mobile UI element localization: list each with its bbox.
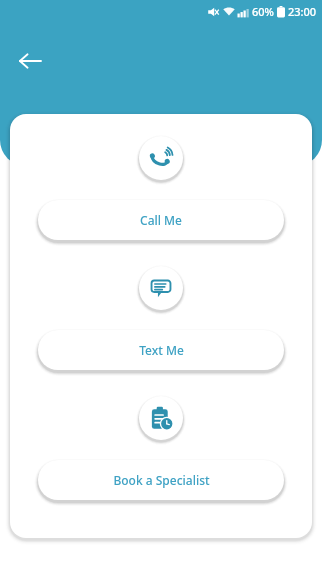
button[interactable]: Book a Specialist	[137, 394, 185, 442]
button[interactable]: Call Me	[38, 200, 284, 240]
staticText: Call Me	[140, 212, 182, 228]
staticText: 23:00	[288, 4, 317, 19]
button[interactable]: Text Me	[137, 264, 185, 312]
staticText: Text Me	[139, 342, 184, 358]
staticText: Book a Specialist	[113, 472, 210, 488]
button[interactable]: Call Me	[137, 134, 185, 182]
button[interactable]: Book a Specialist	[38, 460, 284, 500]
button[interactable]: Back	[10, 41, 50, 81]
staticText: 60%	[252, 4, 274, 19]
button[interactable]: Text Me	[38, 330, 284, 370]
